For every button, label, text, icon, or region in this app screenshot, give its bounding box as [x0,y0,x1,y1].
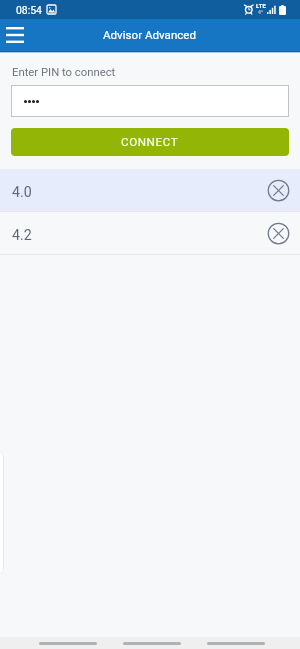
button[interactable] [11,85,289,117]
staticText: 4⁺ [258,9,264,15]
button[interactable]: 4.0 [0,169,300,212]
button[interactable]: Back [207,642,265,645]
staticText: 08:54 [16,4,42,16]
button[interactable]: 4.2 [0,212,300,255]
button[interactable]: Home [123,642,181,645]
button[interactable]: Recent apps [39,642,97,645]
button[interactable]: CONNECT [11,128,289,156]
button[interactable]: Open navigation menu [0,19,30,51]
button[interactable]: Remove 4.0 [264,177,292,205]
button[interactable]: Remove 4.2 [264,220,292,248]
staticText: Advisor Advanced [103,28,197,42]
staticText: LTE [256,3,267,10]
staticText: CONNECT [121,135,179,149]
staticText: 4.0 [12,184,32,201]
staticText: Enter PIN to connect [12,66,116,79]
staticText: 4.2 [12,227,32,244]
